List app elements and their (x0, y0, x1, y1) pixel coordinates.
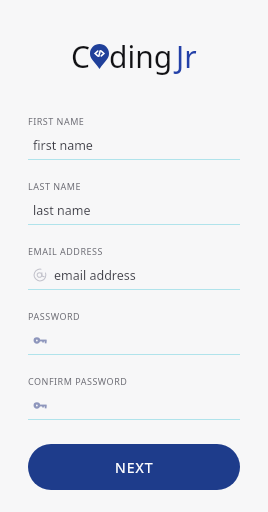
button[interactable]: CONFIRM PASSWORD (28, 375, 240, 420)
button[interactable]: PASSWORD (28, 310, 240, 355)
button[interactable]: LAST NAME (28, 180, 240, 225)
staticText: C (71, 36, 90, 77)
staticText: EMAIL ADDRESS (28, 245, 103, 257)
staticText: last name (33, 202, 91, 219)
staticText: NEXT (115, 458, 154, 477)
staticText: first name (33, 137, 93, 154)
staticText: LAST NAME (28, 180, 82, 192)
button[interactable]: NEXT (28, 444, 240, 490)
staticText: FIRST NAME (28, 115, 85, 127)
staticText: ding (109, 36, 173, 77)
staticText: email address (54, 267, 136, 284)
staticText: PASSWORD (28, 310, 81, 322)
button[interactable]: FIRST NAME (28, 115, 240, 160)
staticText: CONFIRM PASSWORD (28, 375, 128, 387)
staticText: Jr (176, 36, 197, 77)
button[interactable]: EMAIL ADDRESS (28, 245, 240, 290)
